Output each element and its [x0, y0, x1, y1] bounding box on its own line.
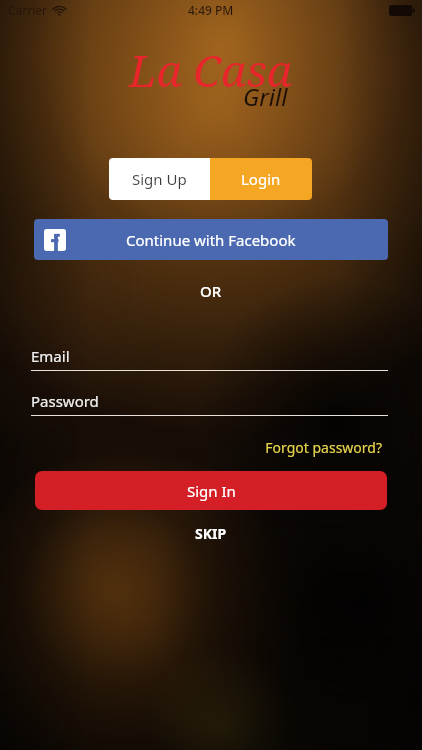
button[interactable]: SKIP	[183, 522, 239, 545]
staticText: OR	[200, 281, 222, 301]
button[interactable]: Sign In	[35, 471, 387, 510]
staticText: Sign In	[187, 481, 236, 501]
staticText: SKIP	[195, 524, 227, 543]
staticText: Sign Up	[132, 169, 187, 189]
staticText: La Casa	[129, 40, 293, 100]
staticText: Password	[31, 391, 99, 411]
button[interactable]: Sign Up	[109, 158, 210, 200]
button[interactable]: Password	[31, 389, 391, 413]
button[interactable]: Forgot password?	[250, 436, 382, 458]
button[interactable]: Email	[31, 344, 391, 368]
staticText: Carrier	[8, 2, 48, 18]
staticText: Forgot password?	[265, 438, 382, 457]
button[interactable]: Continue with Facebook	[34, 219, 388, 260]
staticText: Grill	[243, 80, 288, 113]
staticText: 4:49 PM	[188, 2, 234, 18]
button[interactable]: Login	[210, 158, 312, 200]
staticText: Continue with Facebook	[126, 230, 296, 250]
staticText: Login	[241, 169, 281, 189]
staticText: Email	[31, 346, 70, 366]
